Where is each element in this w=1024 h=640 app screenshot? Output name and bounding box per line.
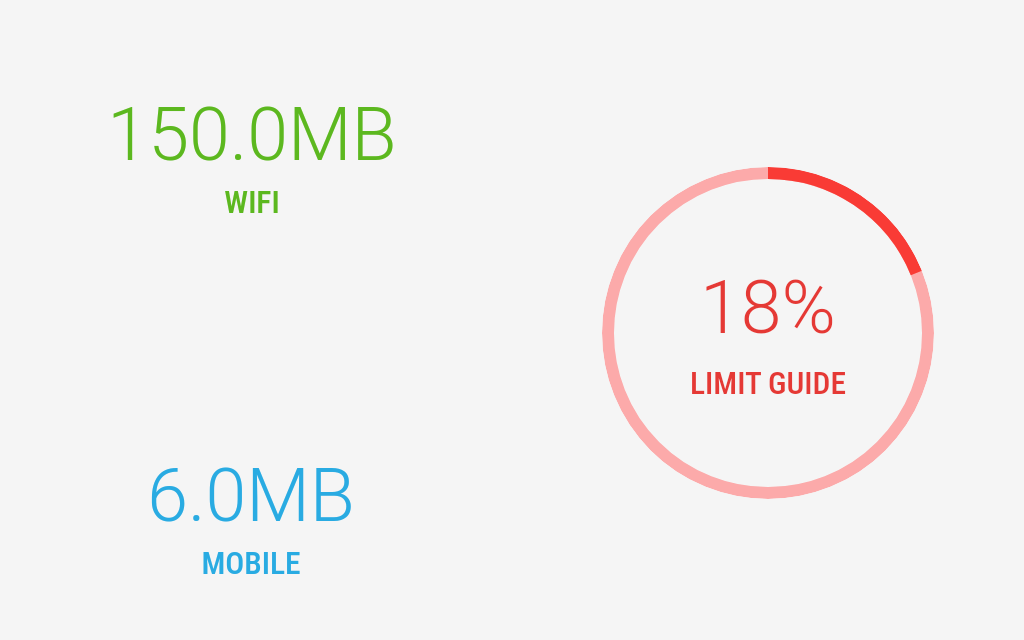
staticText: 150.0MB: [42, 92, 462, 178]
staticText: 18%: [602, 265, 934, 351]
staticText: WIFI: [42, 184, 462, 221]
staticText: 6.0MB: [41, 453, 461, 539]
staticText: LIMIT GUIDE: [602, 365, 934, 402]
button[interactable]: Data limit guide, 18 percent of the limi…: [602, 167, 934, 499]
staticText: MOBILE: [41, 545, 461, 582]
button[interactable]: 6.0MB: [41, 453, 461, 587]
button[interactable]: 150.0MB: [42, 92, 462, 226]
